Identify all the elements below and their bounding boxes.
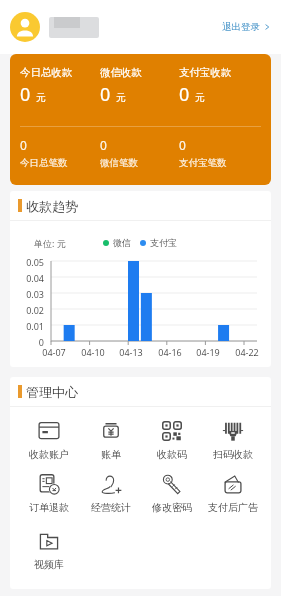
staticText: 订单退款 (29, 501, 69, 513)
staticText: 0 (20, 82, 31, 107)
staticText: 04-22 (231, 346, 263, 358)
staticText: 账单 (101, 448, 121, 460)
staticText: 修改密码 (152, 501, 192, 513)
button[interactable]: 退出登录 (220, 15, 273, 39)
button[interactable]: 订单退款 (18, 460, 80, 513)
staticText: 元 (116, 91, 126, 104)
button[interactable]: 修改密码 (141, 460, 202, 513)
staticText: 今日总笔数 (20, 157, 68, 169)
staticText: 0.03 (10, 288, 44, 300)
staticText: 退出登录 (222, 21, 260, 33)
button[interactable]: 扫码收款 (202, 407, 263, 460)
staticText: 支付宝收款 (179, 66, 232, 79)
button[interactable]: 支付后广告 (202, 460, 263, 513)
staticText: 元 (36, 91, 46, 104)
staticText: 微信 (113, 237, 131, 248)
staticText: 经营统计 (91, 501, 131, 513)
button[interactable]: 经营统计 (80, 460, 141, 513)
button[interactable]: 收款码 (141, 407, 202, 460)
staticText: 收款趋势 (26, 198, 78, 214)
button[interactable]: 账单 (80, 407, 141, 460)
staticText: 视频库 (34, 558, 64, 570)
staticText: 收款码 (157, 448, 187, 460)
staticText: 支付宝笔数 (179, 157, 227, 169)
staticText: 04-13 (115, 346, 147, 358)
staticText: 管理中心 (26, 384, 78, 400)
staticText: 04-16 (154, 346, 186, 358)
staticText: 0 (100, 82, 111, 107)
button[interactable]: 收款账户 (18, 407, 80, 460)
staticText: 0.05 (10, 256, 44, 268)
staticText: 微信收款 (100, 66, 142, 79)
staticText: 0 (179, 137, 186, 153)
staticText: 扫码收款 (213, 448, 253, 460)
staticText: 04-19 (192, 346, 224, 358)
staticText: 微信笔数 (100, 157, 138, 169)
staticText: 收款账户 (29, 448, 69, 460)
staticText: 0 (100, 137, 107, 153)
staticText: 支付后广告 (208, 501, 258, 513)
staticText: 元 (195, 91, 205, 104)
staticText: 0.02 (10, 304, 44, 316)
staticText: 0 (20, 137, 27, 153)
staticText: 0.04 (10, 272, 44, 284)
staticText: 04-07 (38, 346, 70, 358)
staticText: 0 (10, 336, 44, 348)
staticText: 支付宝 (150, 237, 177, 248)
staticText: 04-10 (77, 346, 109, 358)
staticText: 0.01 (10, 320, 44, 332)
staticText: 今日总收款 (20, 66, 73, 79)
staticText: 0 (179, 82, 190, 107)
button[interactable]: 视频库 (18, 517, 79, 570)
staticText: 单位: 元 (34, 237, 66, 249)
